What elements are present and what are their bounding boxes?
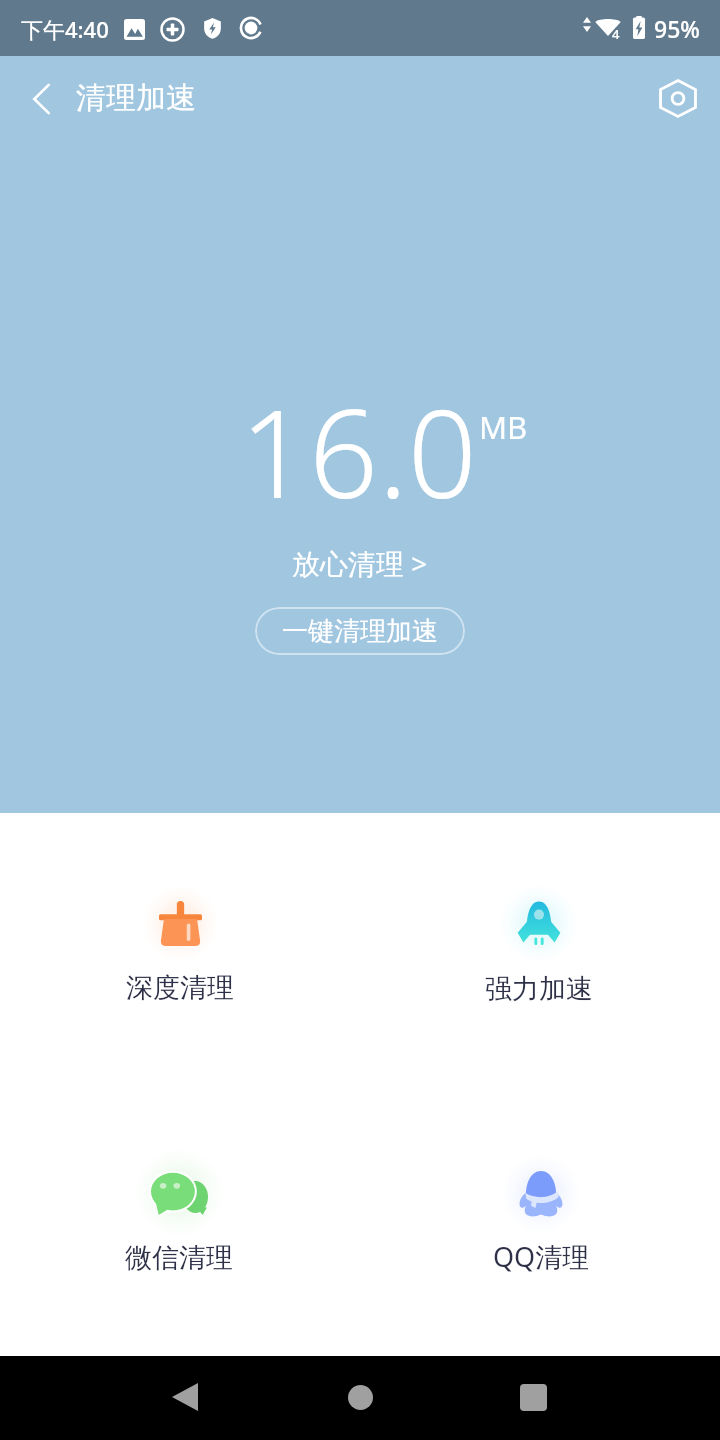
button[interactable]: 微信清理: [89, 1136, 269, 1276]
button[interactable]: Back: [12, 70, 70, 128]
staticText: MB: [479, 406, 528, 448]
staticText: 95%: [654, 13, 700, 44]
button[interactable]: 深度清理: [90, 867, 270, 1007]
button[interactable]: Settings: [646, 66, 710, 130]
staticText: 16.0: [240, 369, 477, 534]
button[interactable]: 放心清理 >: [280, 540, 440, 586]
button[interactable]: Recent apps: [490, 1356, 574, 1440]
staticText: 清理加速: [76, 79, 196, 117]
staticText: 一键清理加速: [282, 615, 438, 648]
staticText: QQ清理: [493, 1238, 590, 1275]
staticText: 强力加速: [485, 972, 593, 1006]
staticText: 放心清理 >: [292, 544, 428, 582]
button[interactable]: Home: [318, 1356, 402, 1440]
staticText: 下午4:40: [21, 14, 109, 44]
button[interactable]: QQ清理: [451, 1136, 631, 1276]
button[interactable]: 一键清理加速: [255, 607, 465, 655]
staticText: 微信清理: [125, 1241, 233, 1275]
staticText: 深度清理: [126, 971, 234, 1005]
button[interactable]: Back: [142, 1356, 226, 1440]
staticText: 4: [612, 25, 620, 43]
button[interactable]: 强力加速: [449, 866, 629, 1006]
